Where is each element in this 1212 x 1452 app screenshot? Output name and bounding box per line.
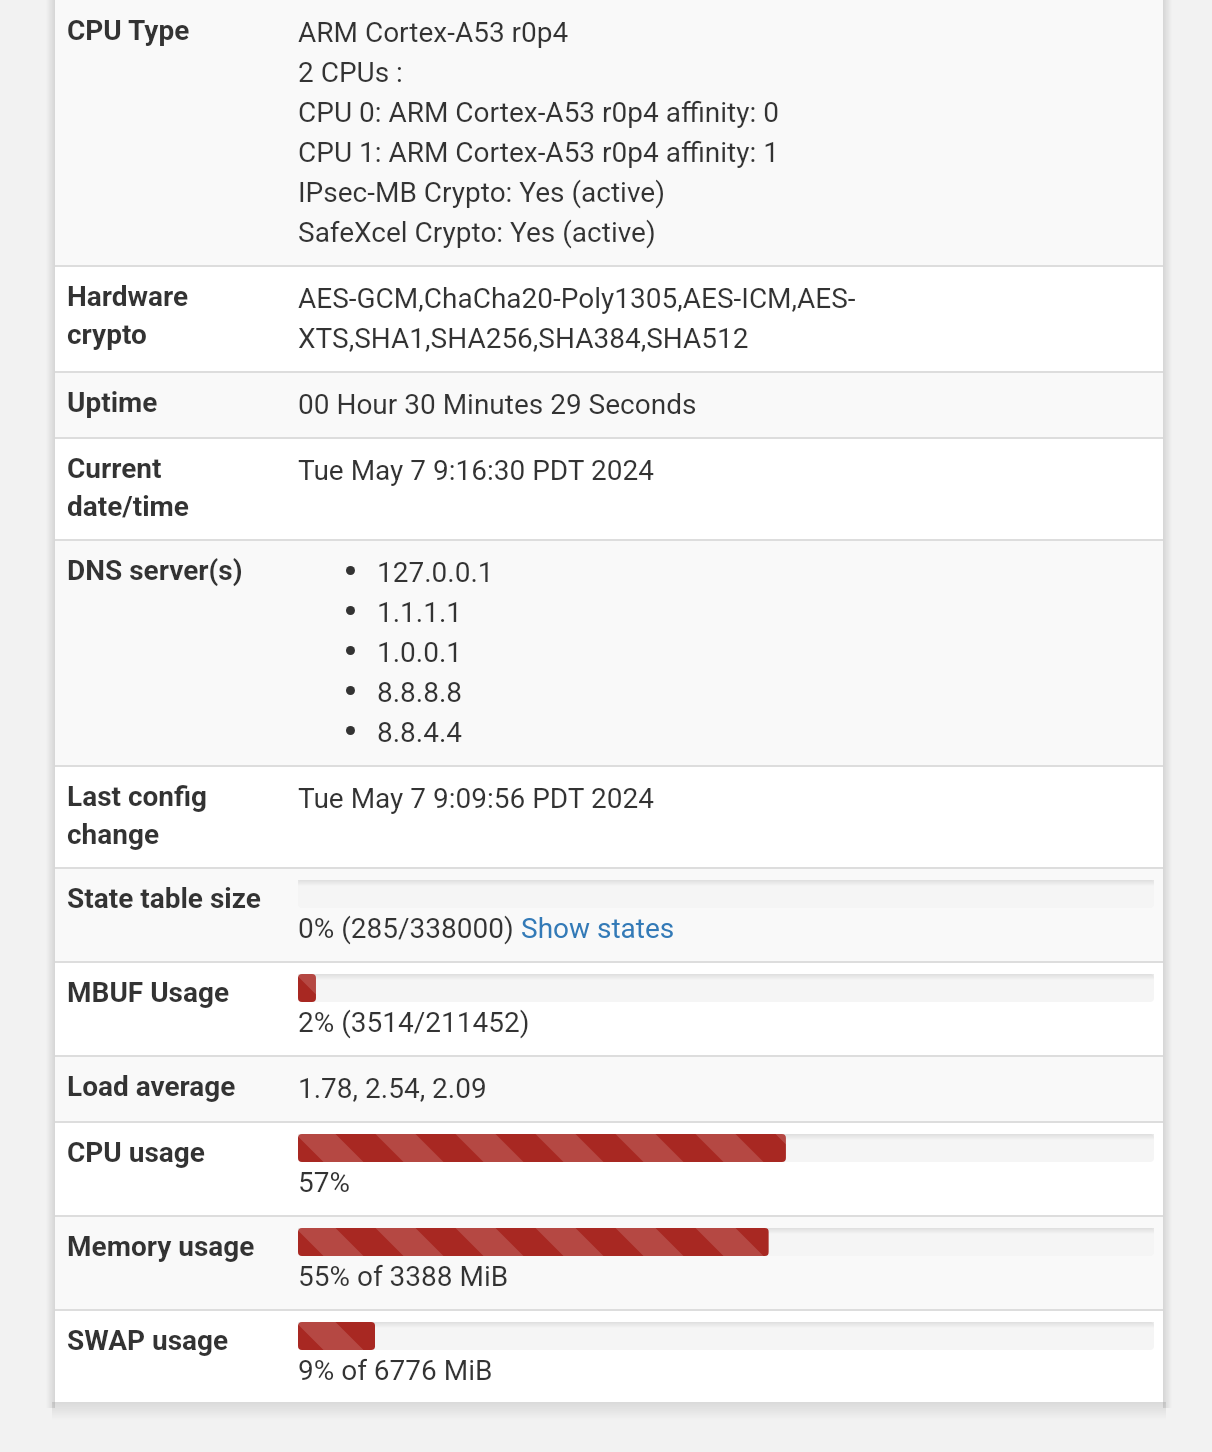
staticText: 9% of 6776 MiB: [298, 1348, 493, 1387]
staticText: CPU Type: [67, 10, 190, 48]
staticText: Hardware crypto: [67, 276, 189, 352]
staticText: 1.78, 2.54, 2.09: [298, 1066, 487, 1106]
staticText: 1.0.0.1: [377, 630, 463, 670]
staticText: CPU usage: [67, 1132, 205, 1170]
staticText: SWAP usage: [67, 1320, 229, 1358]
staticText: DNS server(s): [67, 550, 243, 588]
staticText: AES-GCM,ChaCha20-Poly1305,AES-ICM,AES- X…: [298, 276, 856, 356]
button[interactable]: MBUF Usage: [55, 963, 1163, 1055]
button[interactable]: CPU usage: [55, 1123, 1163, 1215]
staticText: 127.0.0.1: [377, 550, 494, 590]
button[interactable]: Show states: [521, 906, 675, 946]
staticText: 0% (285/338000): [298, 906, 521, 946]
staticText: Current date/time: [67, 448, 189, 524]
staticText: 00 Hour 30 Minutes 29 Seconds: [298, 382, 697, 422]
button[interactable]: State table size: [55, 869, 1163, 961]
staticText: 57%: [298, 1160, 350, 1200]
button[interactable]: Load average: [55, 1057, 1163, 1121]
button[interactable]: SWAP usage: [55, 1311, 1163, 1402]
staticText: Memory usage: [67, 1226, 255, 1264]
staticText: 8.8.8.8: [377, 670, 463, 710]
staticText: Load average: [67, 1066, 236, 1104]
button[interactable]: Memory usage: [55, 1217, 1163, 1309]
staticText: 1.1.1.1: [377, 590, 463, 630]
button[interactable]: CPU Type: [55, 0, 1163, 265]
staticText: ARM Cortex-A53 r0p4 2 CPUs : CPU 0: ARM …: [298, 10, 779, 250]
staticText: Uptime: [67, 382, 158, 420]
button[interactable]: DNS server(s): [55, 541, 1163, 765]
staticText: Tue May 7 9:16:30 PDT 2024: [298, 448, 654, 488]
staticText: 2% (3514/211452): [298, 1000, 530, 1040]
button[interactable]: Last config change: [55, 767, 1163, 867]
staticText: Last config change: [67, 776, 208, 852]
staticText: MBUF Usage: [67, 972, 230, 1010]
button[interactable]: Current date/time: [55, 439, 1163, 539]
staticText: 8.8.4.4: [377, 710, 463, 750]
staticText: Tue May 7 9:09:56 PDT 2024: [298, 776, 654, 816]
staticText: State table size: [67, 878, 261, 916]
staticText: 55% of 3388 MiB: [298, 1254, 509, 1294]
button[interactable]: Uptime: [55, 373, 1163, 437]
button[interactable]: Hardware crypto: [55, 267, 1163, 371]
